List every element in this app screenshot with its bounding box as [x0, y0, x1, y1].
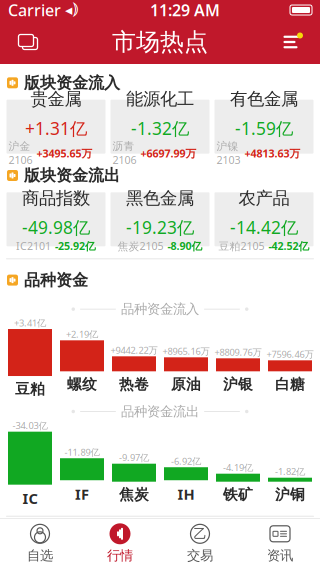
button[interactable]: 自选 [0, 519, 80, 568]
staticText: -11.89亿 [64, 446, 99, 458]
staticText: IF [75, 484, 89, 504]
staticText: 市场热点 [112, 27, 208, 57]
staticText: 11:29 AM [150, 0, 220, 21]
staticText: 版块资金流入 [24, 73, 120, 93]
staticText: 贵金属 [30, 88, 81, 110]
button[interactable]: 农产品 [214, 192, 313, 246]
button[interactable]: 行情 [80, 519, 160, 568]
staticText: 沪铜 [275, 486, 305, 504]
staticText: -9.97亿 [119, 451, 149, 464]
staticText: +9442.22万 [110, 344, 157, 356]
button[interactable]: 文件夹 [6, 22, 50, 62]
staticText: +3495.65万 [36, 146, 92, 160]
staticText: 能源化工 [126, 88, 194, 110]
staticText: 焦炭 [119, 486, 149, 504]
staticText: 主力合约资金流入/流出 [24, 528, 191, 549]
staticText: 沥青2106 [112, 140, 136, 167]
staticText: 乙 [193, 526, 206, 542]
button[interactable]: 乙 [160, 519, 240, 568]
staticText: +7596.46万 [266, 348, 313, 360]
staticText: 白糖 [275, 375, 305, 393]
staticText: 品种资金流出 [121, 403, 199, 420]
staticText: -1.59亿 [235, 117, 293, 140]
staticText: IC [22, 489, 37, 508]
staticText: 农产品 [238, 188, 289, 209]
staticText: 行情 [107, 547, 133, 564]
staticText: 商品指数 [22, 188, 90, 209]
button[interactable]: 资讯 [240, 519, 320, 568]
staticText: +8809.76万 [214, 346, 261, 358]
button[interactable]: 贵金属 [6, 100, 105, 154]
staticText: +6697.99万 [140, 146, 196, 160]
staticText: IH [177, 484, 194, 504]
button[interactable]: 有色金属 [214, 100, 313, 154]
staticText: 自选 [27, 547, 53, 564]
staticText: 热卷 [119, 375, 149, 393]
staticText: 版块资金流出 [24, 166, 120, 185]
staticText: 有色金属 [230, 88, 298, 110]
staticText: 铁矿 [223, 486, 253, 504]
staticText: 螺纹 [67, 375, 97, 393]
staticText: 品种资金流入 [121, 301, 199, 317]
button[interactable]: 黑色金属 [110, 192, 209, 246]
staticText: -25.92亿 [55, 239, 96, 253]
staticText: 原油 [171, 375, 201, 393]
staticText: Carrier [8, 0, 61, 21]
staticText: -1.32亿 [131, 117, 189, 140]
staticText: 黑色金属 [126, 188, 194, 209]
staticText: -1.82亿 [275, 465, 305, 478]
button[interactable]: 商品指数 [6, 192, 105, 246]
staticText: -6.92亿 [171, 455, 201, 467]
staticText: -34.03亿 [12, 419, 47, 432]
staticText: -42.52亿 [268, 239, 309, 253]
staticText: -19.23亿 [126, 216, 194, 239]
staticText: +8965.16万 [162, 345, 209, 357]
staticText: 沪镍2103 [216, 140, 240, 167]
staticText: 豆粕2105 [218, 239, 264, 253]
staticText: -14.42亿 [230, 216, 298, 239]
staticText: ◂⦆ [65, 2, 80, 18]
staticText: +4813.63万 [244, 146, 300, 160]
staticText: -4.19亿 [223, 461, 253, 474]
staticText: 品种资金 [24, 270, 88, 290]
button[interactable]: 能源化工 [110, 100, 209, 154]
staticText: +1.31亿 [25, 117, 87, 140]
staticText: 交易 [187, 547, 213, 564]
staticText: -49.98亿 [22, 216, 90, 239]
staticText: -8.90亿 [167, 239, 202, 253]
button[interactable]: 菜单 [270, 22, 314, 62]
staticText: 资讯 [267, 547, 293, 564]
staticText: 豆粕 [15, 380, 45, 398]
staticText: 沪金2106 [8, 140, 32, 167]
staticText: 焦炭2105 [117, 239, 163, 253]
staticText: +3.41亿 [14, 317, 46, 329]
staticText: IC2101 [16, 239, 51, 253]
staticText: 沪银 [223, 375, 253, 393]
staticText: +2.19亿 [66, 328, 98, 340]
